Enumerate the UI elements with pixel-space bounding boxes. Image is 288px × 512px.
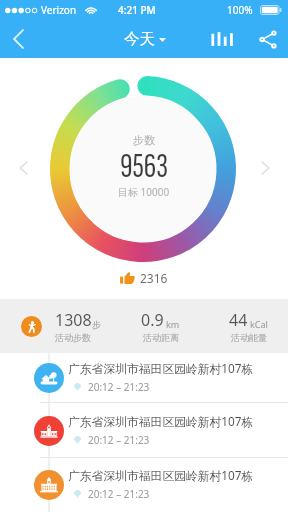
button[interactable]: Next day — [252, 152, 278, 184]
button[interactable]: Back — [0, 20, 36, 58]
button[interactable]: 1308 — [0, 299, 112, 353]
staticText: kCal — [250, 318, 268, 330]
staticText: 2316 — [140, 270, 168, 286]
staticText: 20:12 – 21:23 — [88, 433, 150, 447]
staticText: 步 — [92, 319, 101, 330]
staticText: 1308 — [55, 309, 92, 331]
staticText: 9563 — [120, 145, 169, 187]
staticText: 广东省深圳市福田区园岭新村107栋 — [68, 413, 254, 429]
staticText: 广东省深圳市福田区园岭新村107栋 — [68, 360, 254, 376]
button[interactable]: Statistics — [202, 20, 241, 58]
button[interactable]: 44 — [208, 299, 288, 353]
staticText: 20:12 – 21:23 — [88, 487, 150, 501]
staticText: 100% — [227, 3, 253, 17]
staticText: Verizon — [41, 3, 77, 17]
staticText: 广东省深圳市福田区园岭新村107栋 — [68, 467, 254, 483]
staticText: 4:21 PM — [118, 3, 156, 17]
staticText: km — [166, 318, 180, 330]
button[interactable]: 广东省深圳市福田区园岭新村107栋 — [0, 353, 288, 403]
staticText: 活动步数 — [55, 332, 91, 343]
button[interactable]: Share — [249, 20, 287, 58]
staticText: 44 — [229, 309, 248, 331]
button[interactable]: 0.9 — [120, 299, 200, 353]
button[interactable]: 广东省深圳市福田区园岭新村107栋 — [0, 458, 288, 512]
staticText: 0.9 — [141, 309, 164, 331]
button[interactable]: 2316 — [120, 269, 168, 287]
staticText: 活动能量 — [231, 332, 267, 343]
staticText: 步数 — [133, 133, 155, 147]
staticText: 20:12 – 21:23 — [88, 380, 150, 394]
button[interactable]: Previous day — [10, 152, 36, 184]
button[interactable]: 广东省深圳市福田区园岭新村107栋 — [0, 403, 288, 458]
button[interactable]: 今天 — [124, 20, 166, 58]
staticText: 目标 10000 — [118, 185, 170, 199]
staticText: 今天 — [124, 29, 155, 49]
staticText: 活动距离 — [143, 332, 179, 343]
